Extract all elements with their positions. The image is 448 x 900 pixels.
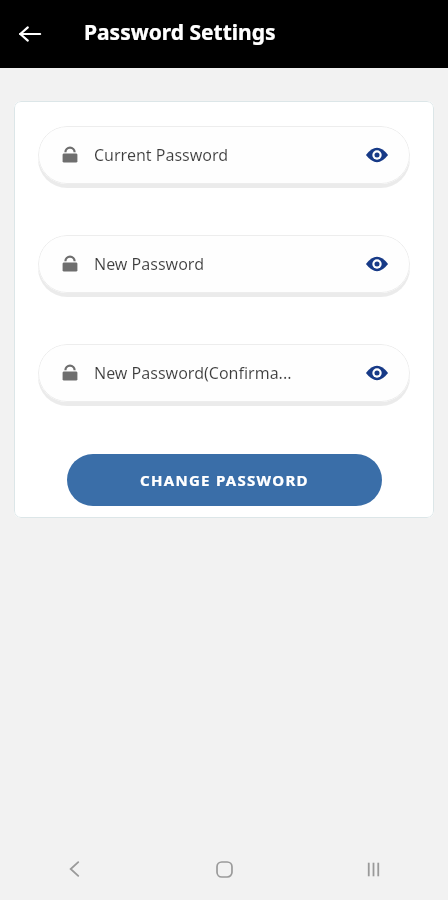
button[interactable]: CHANGE PASSWORD: [67, 454, 382, 506]
button[interactable]: Show password: [364, 251, 390, 277]
button[interactable]: Home: [149, 838, 299, 900]
staticText: New Password(Confirma...: [94, 362, 364, 384]
staticText: Current Password: [94, 144, 364, 166]
staticText: New Password: [94, 253, 364, 275]
button[interactable]: Current Password: [38, 126, 410, 184]
button[interactable]: Back: [10, 14, 50, 54]
button[interactable]: Back: [0, 838, 149, 900]
button[interactable]: Recent apps: [299, 838, 448, 900]
button[interactable]: New Password(Confirma...: [38, 344, 410, 402]
staticText: Password Settings: [84, 18, 276, 47]
button[interactable]: Show password: [364, 360, 390, 386]
button[interactable]: New Password: [38, 235, 410, 293]
staticText: CHANGE PASSWORD: [140, 470, 309, 490]
button[interactable]: Show password: [364, 142, 390, 168]
